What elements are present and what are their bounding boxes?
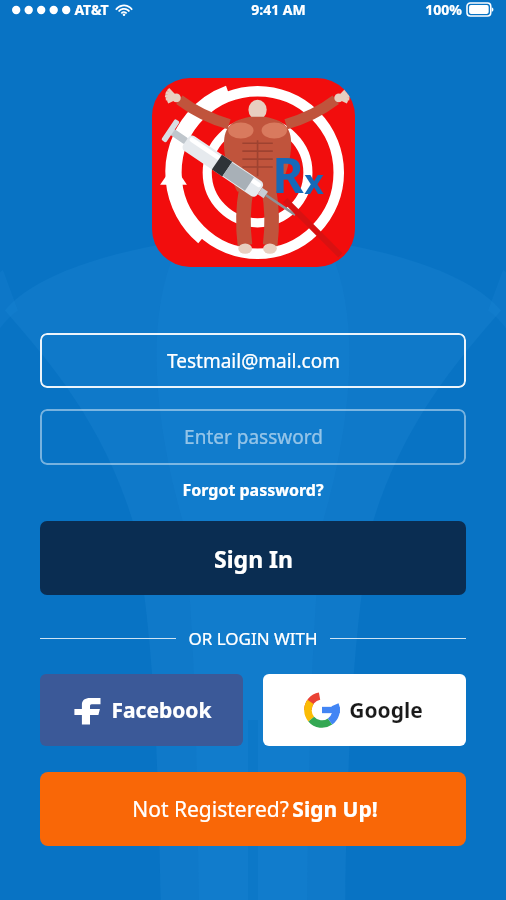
button[interactable]: Google: [263, 674, 466, 746]
staticText: Testmail@mail.com: [167, 348, 340, 374]
staticText: 100%: [425, 0, 462, 19]
button[interactable]: Sign In: [40, 521, 466, 595]
staticText: Enter password: [184, 424, 323, 450]
staticText: AT&T: [74, 0, 109, 19]
button[interactable]: Facebook: [40, 674, 243, 746]
staticText: Sign In: [214, 543, 293, 574]
staticText: 9:41 AM: [251, 0, 306, 19]
button[interactable]: Not Registered?: [40, 772, 466, 846]
staticText: OR LOGIN WITH: [188, 627, 318, 650]
staticText: Not Registered?: [129, 795, 292, 824]
button[interactable]: Enter password: [40, 409, 466, 465]
staticText: Forgot password?: [182, 479, 324, 501]
staticText: Google: [349, 696, 423, 725]
staticText: Sign Up!: [292, 795, 378, 824]
staticText: Facebook: [111, 696, 212, 725]
button[interactable]: Testmail@mail.com: [40, 333, 466, 388]
staticText: R: [272, 142, 304, 207]
button[interactable]: Forgot password?: [174, 476, 332, 504]
staticText: x: [304, 158, 324, 204]
